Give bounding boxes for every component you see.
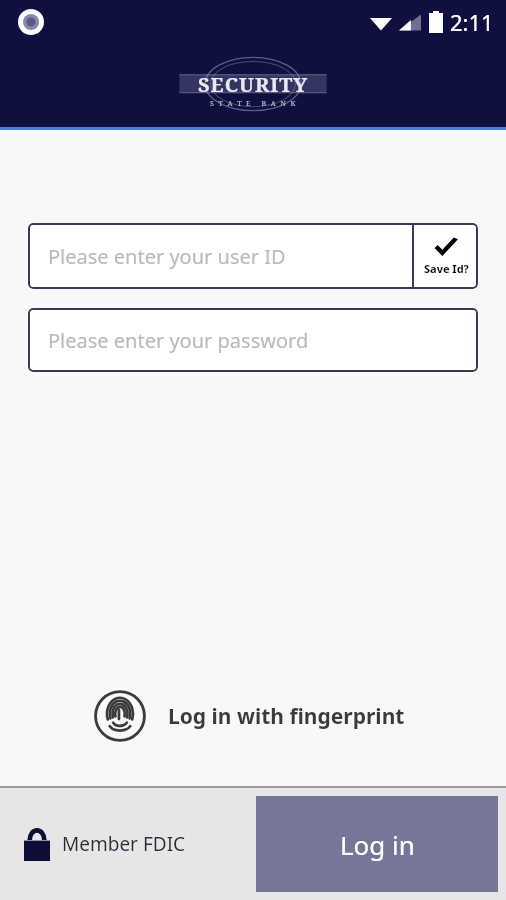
staticText: 2:11 (450, 7, 494, 37)
button[interactable]: Member FDIC (24, 827, 186, 861)
staticText: Log in (340, 827, 415, 862)
staticText: Please enter your user ID (48, 243, 286, 270)
button[interactable]: Please enter your password (28, 308, 478, 372)
staticText: Please enter your password (48, 327, 309, 354)
staticText: SECURITY (198, 71, 309, 98)
staticText: S T A T E B A N K (210, 99, 297, 109)
staticText: Log in with fingerprint (168, 702, 405, 731)
button[interactable]: Log in with fingerprint (94, 690, 405, 742)
staticText: Save Id? (424, 261, 469, 276)
button[interactable]: Please enter your user ID (28, 223, 412, 289)
staticText: Member FDIC (62, 831, 186, 857)
button[interactable]: Save Id (414, 223, 478, 289)
button[interactable]: Log in (256, 796, 498, 892)
